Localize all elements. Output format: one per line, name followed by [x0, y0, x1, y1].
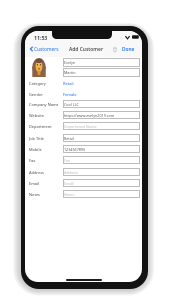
button[interactable]: Website: [29, 110, 58, 120]
staticText: Retail: [64, 136, 74, 141]
button[interactable]: Job Title: [29, 133, 58, 143]
staticText: Mobile: [29, 147, 42, 152]
button[interactable]: Notes: [63, 190, 140, 198]
button[interactable]: Evelyn: [63, 58, 140, 67]
staticText: Cool LLC: [64, 102, 79, 107]
staticText: 11:53: [34, 34, 48, 41]
button[interactable]: Retail: [63, 78, 74, 88]
staticText: Gender: [29, 92, 43, 97]
button[interactable]: Done: [122, 46, 135, 53]
button[interactable]: Category: [29, 78, 58, 88]
staticText: Website: [29, 113, 44, 118]
button[interactable]: Female: [63, 89, 77, 99]
button[interactable]: Cool LLC: [63, 100, 140, 108]
staticText: Address: [64, 170, 78, 175]
button[interactable]: Mobile: [29, 144, 58, 154]
staticText: Job Title: [29, 136, 44, 141]
button[interactable]: Fax: [29, 155, 58, 165]
staticText: 1234567890: [64, 147, 86, 152]
button[interactable]: Delete: [111, 44, 118, 54]
staticText: Martin: [64, 70, 76, 75]
staticText: Add Customer: [69, 46, 104, 53]
button[interactable]: Retail: [63, 134, 140, 142]
staticText: Department Name: [64, 124, 97, 129]
button[interactable]: Notes: [29, 189, 58, 199]
staticText: Customers: [34, 46, 59, 53]
staticText: Fax: [64, 158, 70, 163]
staticText: Email: [29, 181, 40, 186]
staticText: Notes: [64, 192, 75, 197]
staticText: Company Name: [29, 102, 58, 107]
staticText: Notes: [29, 192, 41, 197]
button[interactable]: https://www.evelyn2019.com: [63, 111, 140, 119]
button[interactable]: Email: [29, 178, 58, 188]
button[interactable]: Company Name: [29, 99, 58, 109]
staticText: Evelyn: [64, 60, 76, 65]
staticText: Email: [64, 181, 74, 186]
button[interactable]: 1234567890: [63, 145, 140, 153]
button[interactable]: Department: [29, 121, 58, 131]
button[interactable]: Gender: [29, 89, 58, 99]
button[interactable]: Martin: [63, 68, 140, 77]
button[interactable]: Customers: [30, 44, 59, 54]
button[interactable]: Department Name: [63, 122, 140, 130]
staticText: Address: [29, 170, 44, 175]
staticText: Department: [29, 124, 52, 129]
staticText: Fax: [29, 158, 36, 163]
button[interactable]: Address: [29, 167, 58, 177]
staticText: https://www.evelyn2019.com: [64, 113, 115, 118]
staticText: Category: [29, 81, 46, 86]
button[interactable]: Email: [63, 179, 140, 187]
button[interactable]: Address: [63, 168, 140, 176]
staticText: Retail: [63, 81, 74, 86]
staticText: Female: [63, 92, 77, 97]
button[interactable]: Fax: [63, 156, 140, 164]
